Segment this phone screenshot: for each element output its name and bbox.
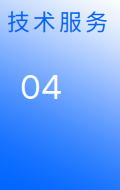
staticText: 04 [20, 67, 62, 107]
staticText: 技术服务 [7, 4, 108, 37]
button[interactable]: 技术服务 [0, 0, 120, 190]
